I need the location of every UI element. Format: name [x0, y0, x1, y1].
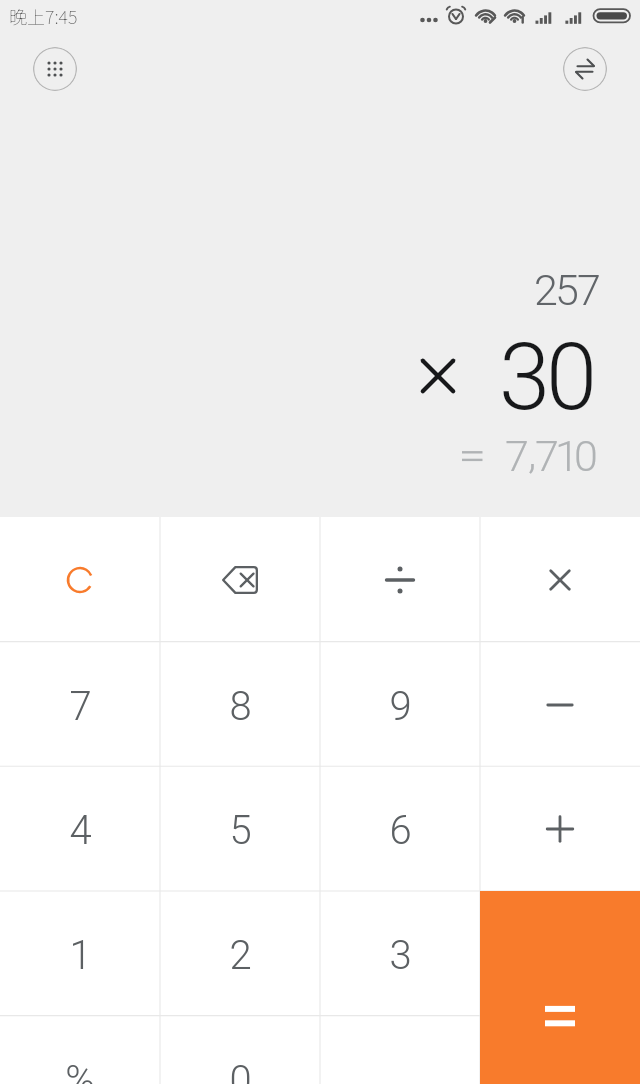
- staticText: 3: [389, 932, 412, 979]
- other: Divide: [382, 562, 418, 598]
- staticText: 3: [499, 324, 551, 432]
- button[interactable]: 6: [320, 766, 480, 891]
- staticText: 8: [229, 683, 252, 730]
- staticText: 4: [69, 807, 92, 854]
- staticText: 1: [555, 431, 579, 481]
- button[interactable]: Unit converter: [563, 47, 607, 91]
- button[interactable]: Multiply: [480, 517, 640, 642]
- button[interactable]: 8: [160, 642, 320, 767]
- button[interactable]: Clear: [0, 517, 160, 642]
- other: Minus: [542, 687, 578, 723]
- button[interactable]: All functions: [33, 47, 77, 91]
- button[interactable]: 4: [0, 766, 160, 891]
- button[interactable]: Backspace: [160, 517, 320, 642]
- button[interactable]: 1: [0, 891, 160, 1016]
- button[interactable]: 9: [320, 642, 480, 767]
- staticText: 7: [535, 431, 559, 481]
- staticText: 2: [534, 265, 558, 315]
- staticText: %: [65, 1057, 95, 1084]
- staticText: 2: [229, 932, 252, 979]
- other: Backspace: [222, 566, 258, 594]
- staticText: 7: [577, 265, 601, 315]
- staticText: 9: [389, 683, 412, 730]
- button[interactable]: 2: [160, 891, 320, 1016]
- staticText: ,: [528, 428, 537, 478]
- button[interactable]: Divide: [320, 517, 480, 642]
- staticText: 0: [546, 324, 598, 432]
- staticText: 0: [229, 1057, 252, 1084]
- button[interactable]: Minus: [480, 642, 640, 767]
- other: Multiply: [542, 562, 578, 598]
- staticText: 0: [574, 431, 598, 481]
- staticText: 晚上7:45: [9, 3, 78, 29]
- button[interactable]: 5: [160, 766, 320, 891]
- staticText: 7: [505, 431, 529, 481]
- button[interactable]: 3: [320, 891, 480, 1016]
- button[interactable]: Plus: [480, 766, 640, 891]
- staticText: 1: [69, 932, 92, 979]
- button[interactable]: %: [0, 1016, 160, 1084]
- button[interactable]: 0: [160, 1016, 320, 1084]
- other: Clear: [65, 565, 95, 595]
- staticText: 5: [229, 807, 252, 854]
- button[interactable]: 7: [0, 642, 160, 767]
- staticText: 6: [389, 807, 412, 854]
- button[interactable]: Equals: [480, 891, 640, 1084]
- other: Plus: [542, 811, 578, 847]
- staticText: 7: [69, 683, 92, 730]
- staticText: 5: [555, 265, 579, 315]
